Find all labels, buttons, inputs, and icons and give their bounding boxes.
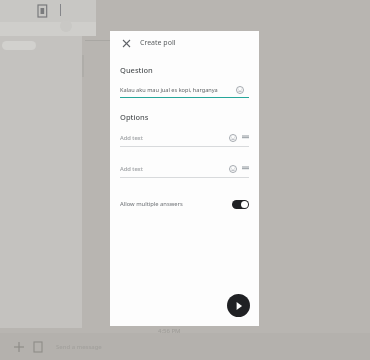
button[interactable]: Add attachment xyxy=(14,342,24,352)
staticText: Allow multiple answers xyxy=(120,200,183,208)
button[interactable]: Insert emoji xyxy=(228,164,237,173)
button[interactable]: Kalau aku mau jual es kopi, harganya ber… xyxy=(120,85,249,94)
button[interactable]: Close xyxy=(119,36,133,50)
staticText: Add text xyxy=(120,165,143,173)
staticText: 4:56 PM xyxy=(158,327,181,335)
button[interactable]: Reorder option xyxy=(242,134,249,141)
staticText: Kalau aku mau jual es kopi, harganya ber… xyxy=(120,86,233,94)
button[interactable]: Add text xyxy=(120,133,249,142)
staticText: Send a message xyxy=(56,343,102,351)
button[interactable]: Insert emoji xyxy=(228,133,237,142)
staticText: Question xyxy=(120,65,153,75)
staticText: Add text xyxy=(120,134,143,142)
button[interactable]: Add text xyxy=(120,164,249,173)
staticText: Create poll xyxy=(140,38,176,48)
button[interactable]: Insert emoji xyxy=(235,85,244,94)
button[interactable]: Sticker xyxy=(34,342,44,352)
staticText: Options xyxy=(120,112,149,122)
button[interactable]: Allow multiple answers xyxy=(120,196,249,212)
button[interactable]: Send poll xyxy=(227,294,250,317)
button[interactable]: Reorder option xyxy=(242,165,249,172)
